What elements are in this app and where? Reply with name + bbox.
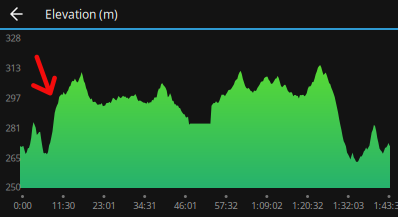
button[interactable]: Back	[0, 0, 45, 28]
staticText: 1:43:33	[373, 199, 398, 212]
staticText: 1:32:03	[333, 199, 364, 212]
staticText: 1:20:32	[292, 199, 323, 212]
staticText: 57:32	[215, 199, 238, 212]
staticText: 313	[5, 62, 20, 74]
staticText: 281	[5, 122, 20, 134]
staticText: 328	[5, 32, 20, 44]
staticText: 46:01	[174, 199, 197, 212]
staticText: 265	[5, 152, 20, 164]
staticText: 1:09:02	[251, 199, 282, 212]
staticText: 23:01	[92, 199, 115, 212]
staticText: 297	[5, 92, 20, 104]
staticText: 0:00	[13, 199, 31, 212]
staticText: Elevation (m)	[45, 6, 118, 22]
staticText: 34:31	[133, 199, 156, 212]
staticText: 250	[5, 181, 20, 193]
staticText: 11:30	[52, 199, 75, 212]
